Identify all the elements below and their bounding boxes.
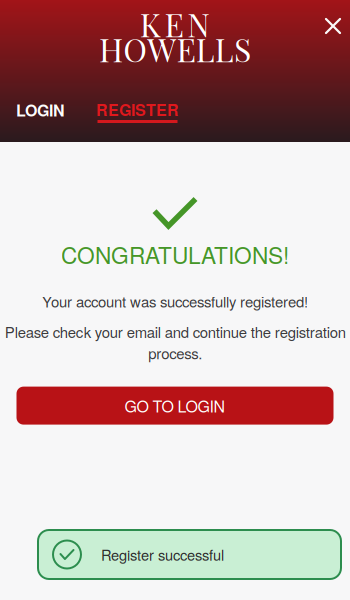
staticText: CONGRATULATIONS! [61, 238, 289, 270]
staticText: L [196, 28, 215, 70]
staticText: N [187, 3, 210, 45]
staticText: W [147, 28, 176, 70]
button[interactable]: LOGIN [0, 99, 81, 121]
button[interactable]: REGISTER [81, 99, 185, 123]
staticText: GO TO LOGIN [124, 394, 225, 417]
button[interactable]: Close [317, 10, 349, 42]
staticText: O [123, 28, 147, 70]
staticText: E [176, 28, 195, 70]
staticText: Register successful [101, 544, 224, 565]
staticText: K [140, 3, 161, 45]
staticText: L [215, 28, 234, 70]
staticText: H [99, 28, 123, 70]
staticText: LOGIN [16, 98, 65, 121]
staticText: S [234, 28, 251, 70]
staticText: Please check your email and continue the… [4, 321, 345, 364]
staticText: REGISTER [96, 98, 179, 121]
button[interactable]: GO TO LOGIN [16, 387, 333, 425]
staticText: Your account was successfully registered… [42, 290, 308, 312]
staticText: E [164, 3, 183, 45]
